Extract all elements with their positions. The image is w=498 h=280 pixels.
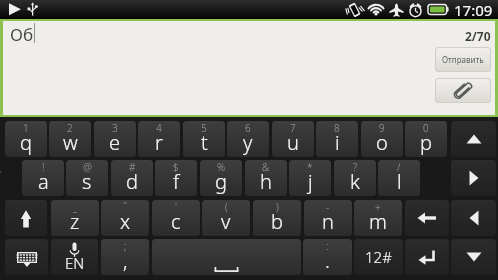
button[interactable]: * [289, 160, 331, 196]
button[interactable]: Отправить [436, 48, 490, 71]
button[interactable]: Move cursor left [451, 200, 496, 236]
button[interactable]: 7 [272, 121, 314, 157]
staticText: p [420, 129, 432, 156]
staticText: e [109, 129, 121, 156]
staticText: 2/70 [465, 28, 491, 44]
button[interactable]: ) [253, 200, 301, 236]
button[interactable]: ' [152, 200, 200, 236]
staticText: 0 [423, 121, 429, 135]
staticText: u [287, 129, 299, 156]
staticText: , [123, 247, 128, 274]
button[interactable]: Symbols [354, 239, 403, 275]
button[interactable]: $ [155, 160, 197, 196]
staticText: * [307, 160, 313, 174]
staticText: l [397, 168, 402, 195]
button[interactable]: Shift [5, 200, 47, 236]
staticText: z [70, 208, 80, 235]
button[interactable]: 2 [49, 121, 91, 157]
staticText: ) [276, 200, 279, 214]
staticText: 4 [156, 121, 162, 135]
staticText: : [326, 239, 329, 253]
staticText: 3 [112, 121, 118, 135]
button[interactable]: Backspace [405, 200, 449, 236]
staticText: ! [42, 160, 45, 174]
staticText: ; [124, 239, 127, 253]
staticText: $ [173, 160, 179, 174]
button[interactable]: # [111, 160, 153, 196]
staticText: 7 [290, 121, 296, 135]
staticText: . [325, 247, 330, 274]
staticText: q [20, 129, 32, 156]
staticText: 17:09 [454, 0, 493, 19]
staticText: 12# [365, 247, 392, 267]
staticText: h [260, 168, 272, 195]
button[interactable]: % [200, 160, 242, 196]
button[interactable]: Move cursor right [451, 160, 496, 196]
staticText: v [221, 208, 231, 235]
staticText: c [171, 208, 181, 235]
staticText: ' [175, 200, 177, 214]
button[interactable]: + [354, 200, 402, 236]
staticText: t [201, 129, 208, 156]
staticText: g [215, 168, 227, 195]
button[interactable]: _ [51, 200, 99, 236]
button[interactable]: 9 [361, 121, 403, 157]
staticText: 9 [379, 121, 385, 135]
button[interactable]: ( [202, 200, 250, 236]
staticText: Об [10, 23, 34, 46]
staticText: y [243, 129, 253, 156]
button[interactable]: 0 [405, 121, 447, 157]
staticText: EN [65, 253, 85, 273]
button[interactable]: ? [334, 160, 376, 196]
button[interactable]: Hide keyboard [5, 239, 48, 275]
button[interactable]: 4 [138, 121, 180, 157]
staticText: n [322, 208, 334, 235]
staticText: 1 [23, 121, 29, 135]
button[interactable]: : [303, 239, 352, 275]
staticText: d [126, 168, 138, 195]
staticText: & [262, 160, 270, 174]
button[interactable]: Voice input, English [51, 239, 98, 275]
button[interactable]: Move cursor down [451, 239, 496, 275]
staticText: # [129, 160, 136, 174]
staticText: ˝ [123, 200, 128, 214]
staticText: @ [83, 160, 92, 174]
button[interactable]: @ [66, 160, 108, 196]
staticText: s [82, 168, 92, 195]
button[interactable]: Move cursor up [451, 121, 496, 157]
button[interactable]: - [304, 200, 352, 236]
staticText: 2 [67, 121, 73, 135]
button[interactable]: 5 [183, 121, 225, 157]
staticText: m [369, 208, 387, 235]
staticText: 8 [334, 121, 340, 135]
button[interactable]: 6 [227, 121, 269, 157]
staticText: Отправить [442, 54, 484, 65]
staticText: i [335, 129, 340, 156]
button[interactable]: / [378, 160, 420, 196]
staticText: ( [225, 200, 228, 214]
button[interactable]: ˝ [101, 200, 149, 236]
staticText: f [173, 168, 180, 195]
staticText: j [308, 168, 313, 195]
staticText: + [375, 200, 381, 214]
staticText: - [326, 200, 330, 214]
staticText: r [155, 129, 163, 156]
button[interactable]: Space [152, 239, 301, 275]
button[interactable]: ! [22, 160, 64, 196]
staticText: k [350, 168, 360, 195]
staticText: 6 [245, 121, 251, 135]
staticText: w [63, 129, 78, 156]
staticText: o [376, 129, 388, 156]
button[interactable]: & [245, 160, 287, 196]
button[interactable]: 3 [94, 121, 136, 157]
staticText: % [217, 160, 226, 174]
staticText: ? [353, 160, 358, 174]
button[interactable]: Attach file [436, 79, 490, 102]
button[interactable]: 1 [5, 121, 47, 157]
staticText: a [38, 168, 49, 195]
button[interactable]: 8 [316, 121, 358, 157]
staticText: _ [73, 200, 78, 214]
button[interactable]: ; [101, 239, 149, 275]
button[interactable]: Enter [405, 239, 449, 275]
staticText: 5 [201, 121, 207, 135]
